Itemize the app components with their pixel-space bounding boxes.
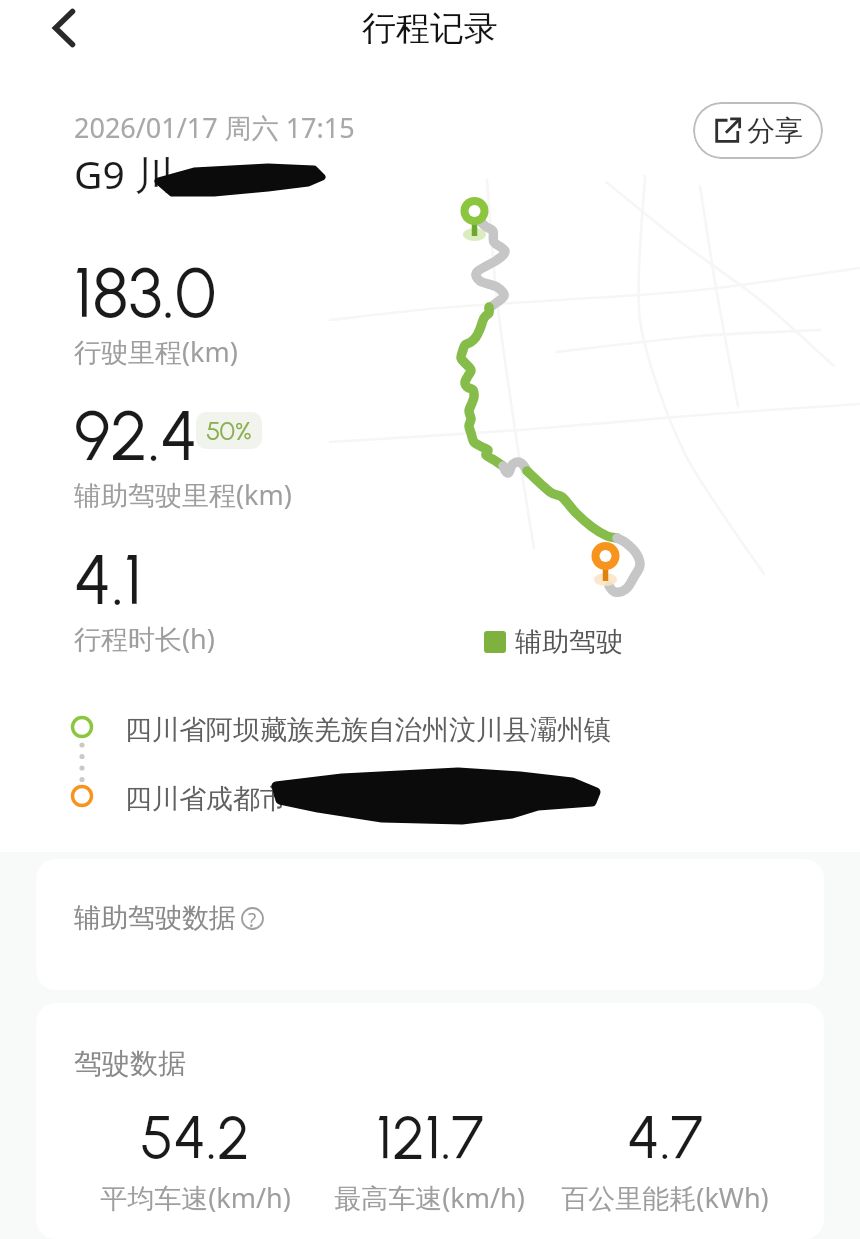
button[interactable]: Back bbox=[38, 2, 90, 54]
staticText: 50% bbox=[206, 415, 252, 446]
staticText: 121.7 bbox=[376, 1101, 484, 1173]
staticText: G9 川 bbox=[74, 147, 174, 200]
staticText: 2026/01/17 周六 17:15 bbox=[74, 109, 355, 146]
staticText: 辅助驾驶数据 bbox=[74, 901, 236, 935]
button[interactable]: Trip route origin and destination bbox=[36, 700, 824, 830]
staticText: 四川省成都市 bbox=[125, 782, 287, 816]
staticText: 4.1 bbox=[74, 538, 143, 621]
staticText: 驾驶数据 bbox=[74, 1046, 186, 1081]
staticText: ? bbox=[248, 907, 257, 930]
staticText: 最高车速(km/h) bbox=[334, 1179, 525, 1216]
staticText: 183.0 bbox=[74, 251, 217, 334]
staticText: 分享 bbox=[747, 113, 803, 148]
staticText: 辅助驾驶里程(km) bbox=[74, 476, 292, 513]
staticText: 行程记录 bbox=[362, 7, 498, 50]
button[interactable]: 辅助驾驶数据 bbox=[36, 859, 824, 990]
staticText: 92.4 bbox=[74, 394, 198, 477]
staticText: 行驶里程(km) bbox=[74, 333, 238, 370]
staticText: 百公里能耗(kWh) bbox=[561, 1179, 769, 1216]
staticText: 平均车速(km/h) bbox=[100, 1179, 291, 1216]
staticText: 四川省阿坝藏族羌族自治州汶川县灞州镇 bbox=[125, 713, 611, 747]
button[interactable]: 分享 bbox=[693, 102, 823, 159]
staticText: 4.7 bbox=[627, 1101, 703, 1173]
staticText: 行程时长(h) bbox=[74, 620, 215, 657]
staticText: 辅助驾驶 bbox=[515, 625, 623, 659]
staticText: 54.2 bbox=[140, 1101, 250, 1173]
button[interactable]: Trip map bbox=[330, 170, 860, 620]
